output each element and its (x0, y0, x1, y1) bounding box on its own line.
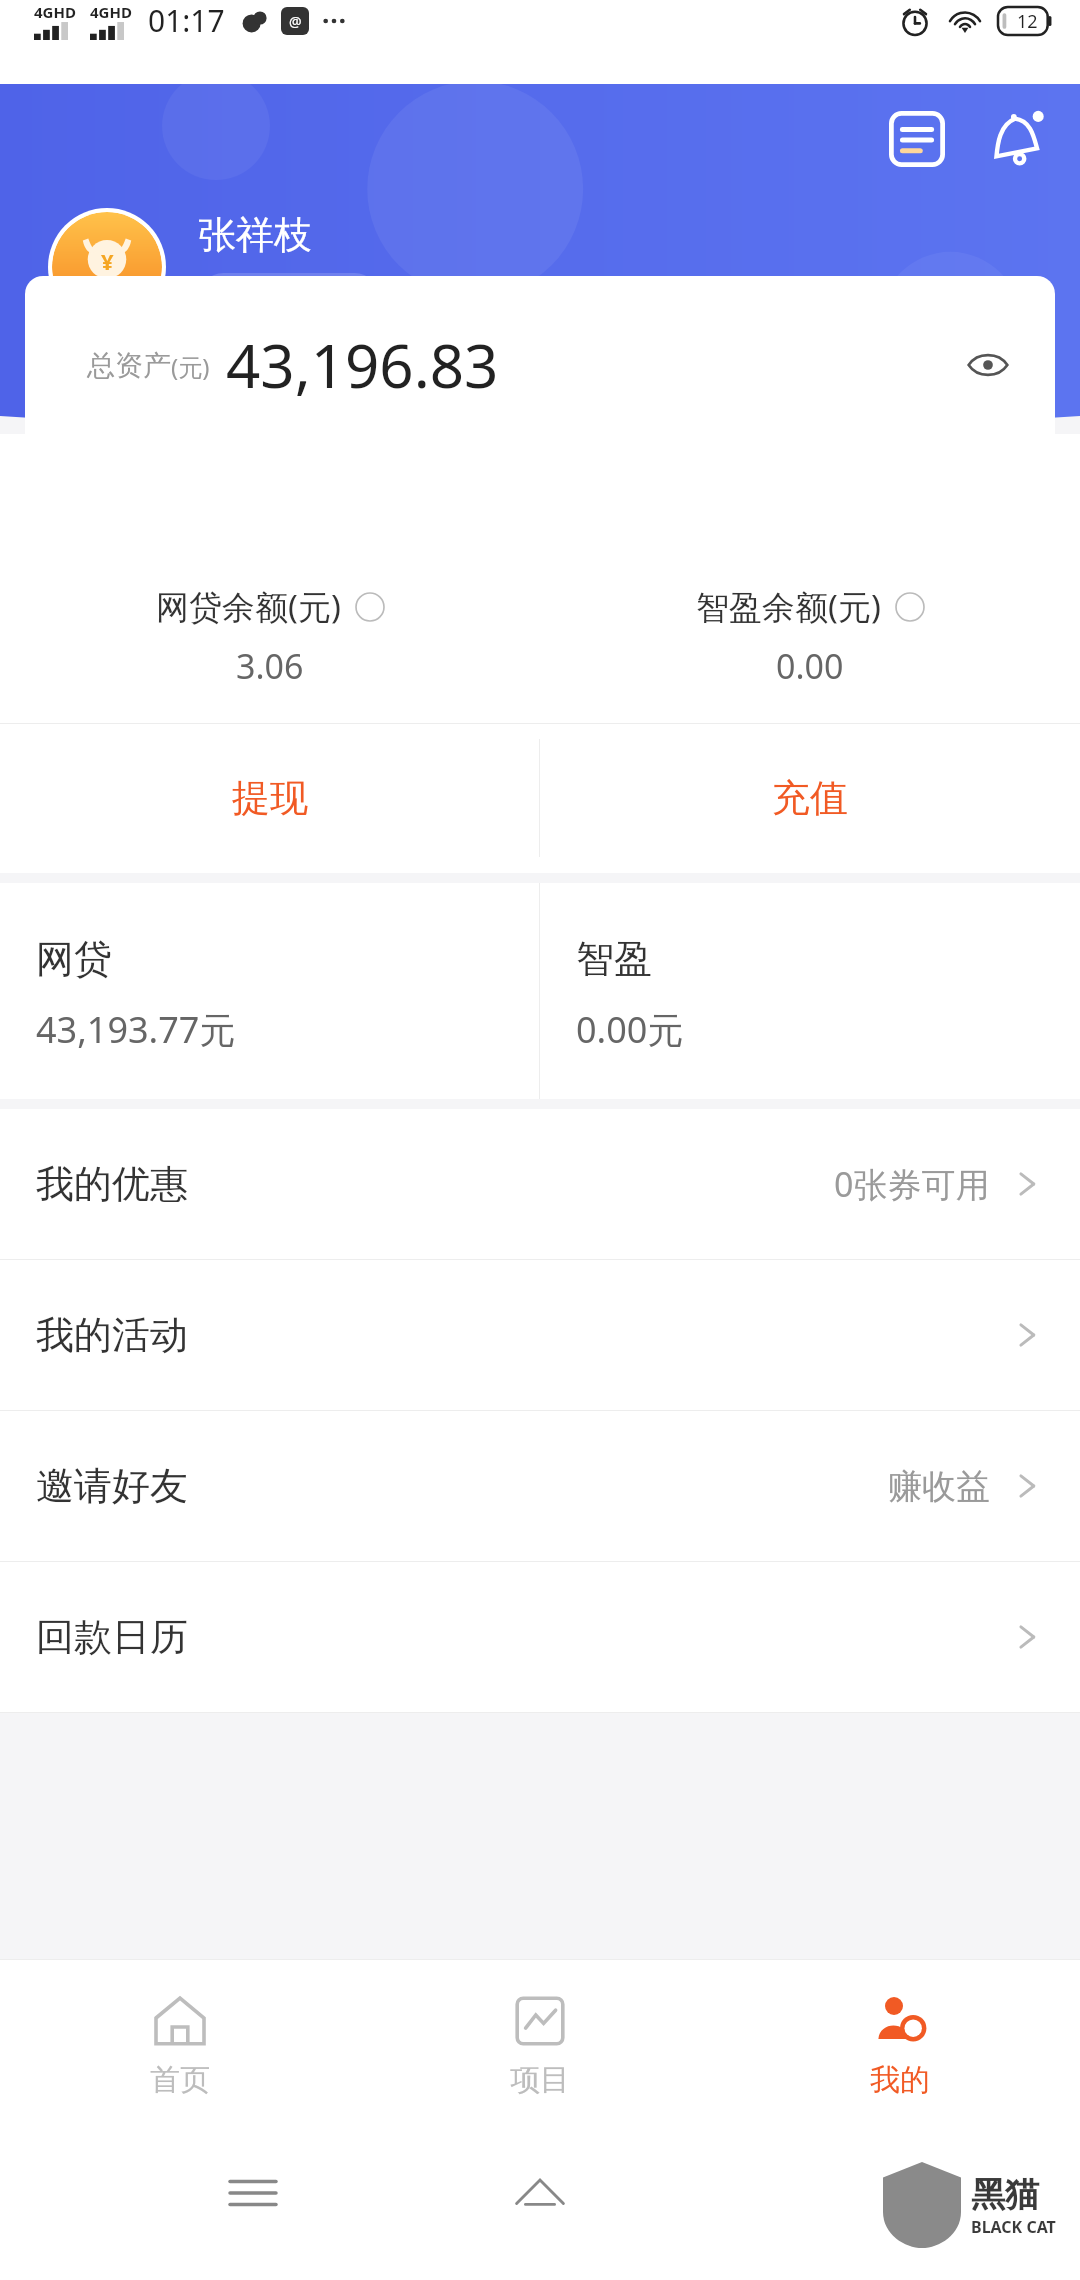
staticText: 网贷余额(元) (156, 584, 341, 629)
staticText: 我的活动 (36, 1311, 188, 1359)
button[interactable]: 邀请好友 (0, 1411, 1080, 1561)
staticText: 总资产 (87, 348, 171, 383)
button[interactable]: Records (882, 104, 952, 174)
staticText: 智盈余额(元) (696, 584, 881, 629)
staticText: 12 (1017, 9, 1038, 34)
staticText: 0张券可用 (834, 1161, 990, 1207)
button[interactable]: 我的活动 (0, 1260, 1080, 1410)
staticText: 提现 (232, 774, 308, 822)
staticText: 网贷 (36, 935, 112, 983)
button[interactable]: Home (505, 2158, 575, 2228)
staticText: 01:17 (148, 0, 225, 41)
button[interactable]: 充值 (540, 723, 1080, 873)
staticText: 我的 (870, 2061, 930, 2099)
staticText: (元) (171, 350, 210, 383)
staticText: 回款日历 (36, 1613, 188, 1661)
staticText: 我的优惠 (36, 1160, 188, 1208)
button[interactable]: Notifications (980, 104, 1050, 174)
staticText: 张祥枝 (198, 211, 312, 259)
staticText: 黑猫 (971, 2173, 1039, 2216)
button[interactable]: 提现 (0, 723, 539, 873)
staticText: 0.00 (776, 643, 844, 689)
button[interactable]: 网贷 (0, 883, 539, 1099)
button[interactable]: 项目 (360, 1960, 720, 2130)
button[interactable]: Toggle visibility (961, 338, 1015, 392)
staticText: 43,196.83 (226, 324, 499, 406)
staticText: 43,193.77元 (36, 1005, 236, 1054)
button[interactable]: Recents (218, 2158, 288, 2228)
staticText: ¥ (101, 246, 114, 276)
staticText: 0.00元 (576, 1005, 684, 1054)
staticText: BLACK CAT (971, 2216, 1056, 2238)
staticText: 充值 (772, 774, 848, 822)
button[interactable]: 回款日历 (0, 1562, 1080, 1712)
staticText: 首页 (150, 2061, 210, 2099)
staticText: 项目 (510, 2061, 570, 2099)
button[interactable]: 网贷余额(元) (0, 584, 540, 689)
staticText: 4GHD (34, 2, 76, 22)
button[interactable]: 智盈 (540, 883, 1080, 1099)
staticText: 3.06 (236, 643, 304, 689)
staticText: 智盈 (576, 935, 652, 983)
button[interactable]: 白银会员 (198, 273, 380, 324)
button[interactable]: 智盈余额(元) (540, 584, 1080, 689)
staticText: 邀请好友 (36, 1462, 188, 1510)
staticText: @ (289, 12, 302, 31)
button[interactable]: 首页 (0, 1960, 360, 2130)
button[interactable]: 我的 (720, 1960, 1080, 2130)
button[interactable]: 我的优惠 (0, 1109, 1080, 1259)
staticText: 赚收益 (888, 1465, 990, 1508)
staticText: 4GHD (90, 2, 132, 22)
